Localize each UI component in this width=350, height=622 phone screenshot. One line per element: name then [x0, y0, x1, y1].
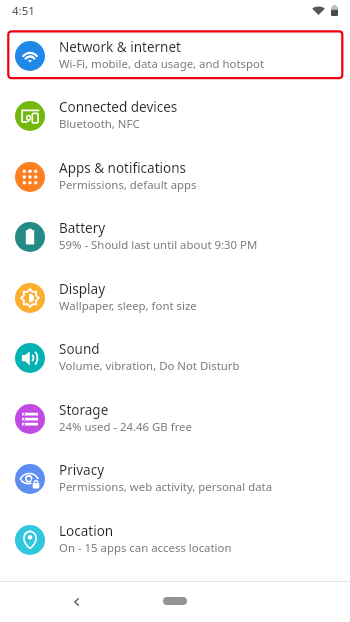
staticText: Battery — [59, 219, 106, 237]
staticText: Wi-Fi, mobile, data usage, and hotspot — [59, 56, 265, 72]
button[interactable]: Sound — [0, 327, 350, 388]
staticText: Bluetooth, NFC — [59, 116, 140, 132]
staticText: Privacy — [59, 461, 105, 479]
staticText: 59% - Should last until about 9:30 PM — [59, 237, 258, 253]
button[interactable]: Battery — [0, 206, 350, 267]
staticText: Apps & notifications — [59, 159, 186, 177]
button[interactable]: Back — [62, 588, 90, 616]
button[interactable]: Apps & notifications — [0, 146, 350, 207]
button[interactable]: Privacy — [0, 448, 350, 509]
button[interactable]: Display — [0, 267, 350, 328]
staticText: On - 15 apps can access location — [59, 540, 232, 556]
staticText: Permissions, default apps — [59, 177, 197, 193]
staticText: Location — [59, 522, 114, 540]
button[interactable]: Network & internet — [0, 25, 350, 86]
button[interactable]: Location — [0, 509, 350, 570]
staticText: Display — [59, 280, 106, 298]
staticText: Storage — [59, 401, 109, 419]
button[interactable]: Storage — [0, 388, 350, 449]
staticText: Volume, vibration, Do Not Disturb — [59, 358, 240, 374]
button[interactable]: Connected devices — [0, 85, 350, 146]
staticText: Network & internet — [59, 38, 181, 56]
staticText: 24% used - 24.46 GB free — [59, 419, 192, 435]
staticText: Connected devices — [59, 98, 178, 116]
staticText: 4:51 — [12, 3, 35, 19]
staticText: Sound — [59, 340, 100, 358]
button[interactable]: Home — [153, 590, 197, 614]
staticText: Permissions, web activity, personal data — [59, 479, 273, 495]
staticText: Wallpaper, sleep, font size — [59, 298, 197, 314]
